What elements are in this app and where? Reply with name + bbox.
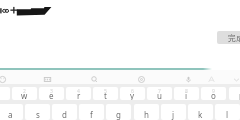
button[interactable]: 完成 xyxy=(217,31,240,44)
button[interactable]: k xyxy=(188,104,213,120)
button[interactable]: Hide keyboard xyxy=(229,72,240,86)
staticText: h xyxy=(144,109,149,120)
staticText: d xyxy=(62,109,67,120)
staticText: f xyxy=(90,109,93,120)
staticText: 6 xyxy=(131,88,134,95)
staticText: u xyxy=(157,90,162,100)
staticText: p xyxy=(239,90,240,100)
button[interactable]: d xyxy=(52,104,77,120)
button[interactable]: f xyxy=(79,104,104,120)
button[interactable]: u xyxy=(147,87,172,100)
button[interactable]: h xyxy=(134,104,159,120)
button[interactable]: Translate xyxy=(204,72,218,86)
staticText: 2 xyxy=(23,88,26,95)
button[interactable]: t xyxy=(93,87,118,100)
staticText: w xyxy=(21,90,28,100)
staticText: l xyxy=(226,109,229,120)
button[interactable]: Voice input xyxy=(181,72,195,86)
staticText: g xyxy=(116,109,121,120)
staticText: 完成 xyxy=(228,33,240,43)
staticText: 4 xyxy=(77,88,80,95)
staticText: y xyxy=(130,90,135,100)
button[interactable]: Keyboard layout xyxy=(40,72,54,86)
button[interactable]: p xyxy=(229,87,240,100)
button[interactable]: i xyxy=(174,87,199,100)
staticText: 9 xyxy=(212,88,215,95)
button[interactable]: r xyxy=(66,87,91,100)
button[interactable]: g xyxy=(106,104,131,120)
button[interactable]: y xyxy=(120,87,145,100)
button[interactable]: Settings xyxy=(134,72,148,86)
button[interactable]: s xyxy=(25,104,50,120)
staticText: k xyxy=(198,109,203,120)
button[interactable]: e xyxy=(39,87,64,100)
staticText: t xyxy=(104,90,107,100)
staticText: j xyxy=(172,109,175,120)
staticText: 7 xyxy=(158,88,161,95)
button[interactable]: Search xyxy=(87,72,101,86)
button[interactable]: j xyxy=(161,104,186,120)
staticText: s xyxy=(36,109,40,120)
button[interactable]: Emoji xyxy=(0,72,9,86)
staticText: 8 xyxy=(185,88,188,95)
staticText: e xyxy=(49,90,54,100)
staticText: 3 xyxy=(50,88,53,95)
staticText: 5 xyxy=(104,88,107,95)
staticText: a xyxy=(8,109,13,120)
staticText: i xyxy=(185,90,188,100)
button[interactable]: w xyxy=(12,87,37,100)
button[interactable]: a xyxy=(0,104,23,120)
button[interactable]: o xyxy=(201,87,226,100)
staticText: r xyxy=(77,90,81,100)
button[interactable]: l xyxy=(215,104,240,120)
staticText: o xyxy=(211,90,216,100)
